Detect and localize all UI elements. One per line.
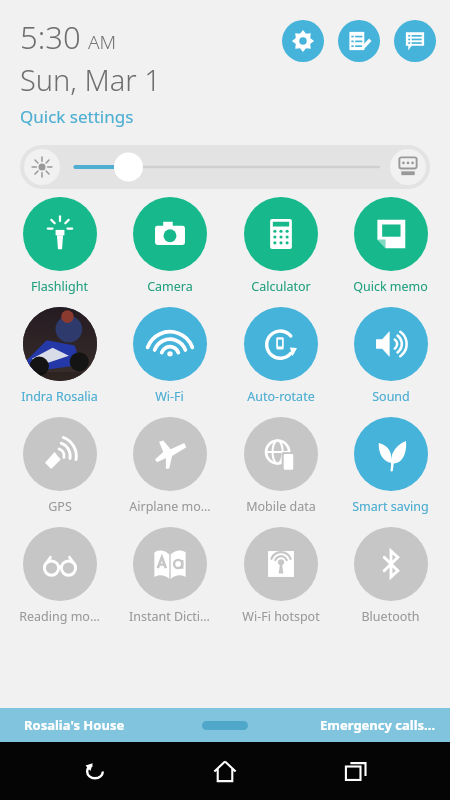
button[interactable]: Brightness [24,149,60,185]
staticText: Wi-Fi hotspot [242,608,320,625]
button[interactable]: Edit quick settings [338,20,380,62]
staticText: Sound [372,388,410,405]
button[interactable]: Rosalia's House [24,716,125,734]
button[interactable]: Smart saving [339,417,442,515]
staticText: AM [88,29,117,55]
button[interactable]: GPS [8,417,111,515]
staticText: GPS [48,498,72,515]
button[interactable]: Instant Dicti… [118,527,221,625]
button[interactable]: Wi-Fi hotspot [229,527,332,625]
staticText: Reading mo… [19,608,100,625]
button[interactable]: Back [59,742,131,800]
staticText: Sun, Mar 1 [20,60,161,99]
staticText: Mobile data [246,498,316,515]
staticText: Bluetooth [361,608,420,625]
staticText: Auto-rotate [247,388,315,405]
button[interactable] [202,721,248,730]
button[interactable]: Camera [118,197,221,295]
button[interactable]: Home [189,742,261,800]
button[interactable]: Bluetooth [339,527,442,625]
staticText: Camera [147,278,193,295]
staticText: Airplane mo… [129,498,211,515]
button[interactable]: Quick memo [339,197,442,295]
staticText: Flashlight [31,278,88,295]
button[interactable]: Calculator [229,197,332,295]
staticText: Smart saving [352,498,429,515]
button[interactable]: Settings [282,20,324,62]
button[interactable]: Flashlight [8,197,111,295]
button[interactable]: Auto-rotate [229,307,332,405]
staticText: Calculator [251,278,311,295]
button[interactable]: Recent apps [320,742,392,800]
staticText: Indra Rosalia [21,388,98,405]
button[interactable]: Wi-Fi [118,307,221,405]
button[interactable]: Emergency calls… [320,716,436,734]
staticText: Wi-Fi [155,388,184,405]
button[interactable]: Notifications [394,20,436,62]
button[interactable]: Mobile data [229,417,332,515]
staticText: 5:30 [20,16,81,58]
button[interactable]: Indra Rosalia [8,307,111,405]
staticText: Quick memo [353,278,428,295]
button[interactable]: Sound [339,307,442,405]
button[interactable] [20,145,430,189]
staticText: Instant Dicti… [129,608,210,625]
button[interactable]: Auto brightness [390,149,426,185]
button[interactable]: Reading mo… [8,527,111,625]
button[interactable]: Airplane mo… [118,417,221,515]
button[interactable]: Quick settings [20,105,134,128]
